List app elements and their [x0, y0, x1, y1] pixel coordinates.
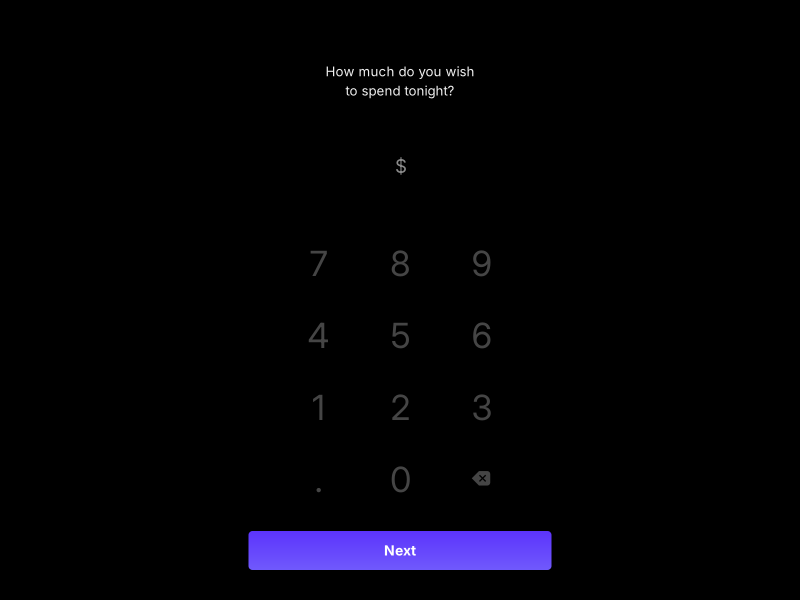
staticText: 4: [307, 314, 329, 356]
button[interactable]: 2: [361, 372, 439, 442]
button[interactable]: 6: [443, 300, 521, 370]
button[interactable]: 8: [361, 228, 439, 298]
staticText: 7: [309, 242, 327, 284]
button[interactable]: Next: [248, 531, 551, 570]
staticText: 1: [312, 386, 325, 428]
staticText: 9: [471, 242, 492, 284]
button[interactable]: 5: [361, 300, 439, 370]
button[interactable]: Delete: [442, 443, 520, 513]
staticText: 8: [390, 242, 411, 284]
button[interactable]: 9: [443, 228, 521, 298]
staticText: 3: [471, 386, 492, 428]
button[interactable]: 4: [279, 300, 357, 370]
staticText: How much do you wish: [325, 63, 474, 79]
button[interactable]: 3: [443, 372, 521, 442]
staticText: .: [314, 458, 322, 500]
staticText: 5: [390, 314, 410, 356]
staticText: 0: [390, 458, 411, 500]
staticText: Next: [384, 542, 416, 559]
button[interactable]: .: [279, 444, 357, 514]
button[interactable]: 7: [279, 228, 357, 298]
button[interactable]: 0: [361, 444, 439, 514]
staticText: 2: [390, 386, 410, 428]
staticText: to spend tonight?: [345, 82, 454, 99]
button[interactable]: 1: [279, 372, 357, 442]
staticText: 6: [471, 314, 492, 356]
staticText: $: [395, 155, 407, 177]
